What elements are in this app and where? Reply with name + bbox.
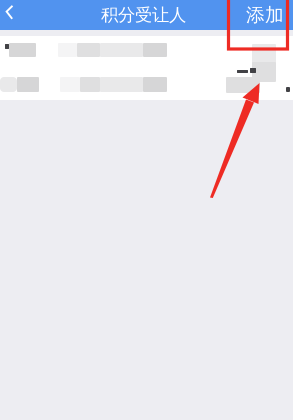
button[interactable] [0,72,293,101]
staticText: 积分受让人 [101,4,186,26]
button[interactable]: Back [0,0,30,30]
staticText: 添加 [246,3,284,26]
button[interactable] [0,36,293,72]
button[interactable]: 添加 [237,0,293,30]
